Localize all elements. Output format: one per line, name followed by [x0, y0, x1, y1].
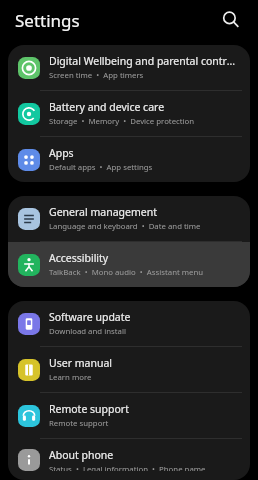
staticText: Apps — [49, 146, 74, 160]
staticText: About phone — [49, 448, 114, 462]
button[interactable]: User manual — [8, 347, 250, 392]
staticText: Accessibility — [49, 251, 109, 265]
button[interactable]: Software update — [8, 301, 250, 346]
button[interactable]: General management — [8, 196, 250, 241]
button[interactable]: About phone — [8, 439, 250, 480]
staticText: Remote support — [49, 418, 109, 429]
button[interactable]: Accessibility — [8, 242, 250, 287]
staticText: Software update — [49, 310, 131, 324]
staticText: General management — [49, 205, 157, 219]
staticText: Status • Legal information • Phone name — [49, 464, 206, 471]
button[interactable]: Remote support — [8, 393, 250, 438]
staticText: Learn more — [49, 372, 92, 383]
staticText: Download and install — [49, 326, 126, 337]
staticText: Remote support — [49, 402, 129, 416]
staticText: Default apps • App settings — [49, 162, 153, 173]
staticText: Storage • Memory • Device protection — [49, 116, 195, 127]
staticText: Battery and device care — [49, 100, 165, 114]
button[interactable]: Apps — [8, 137, 250, 182]
staticText: Settings — [15, 9, 80, 32]
button[interactable]: Battery and device care — [8, 91, 250, 136]
staticText: TalkBack • Mono audio • Assistant menu — [49, 267, 204, 278]
staticText: User manual — [49, 356, 112, 370]
button[interactable]: Search — [218, 7, 244, 33]
button[interactable]: Digital Wellbeing and parental controls — [8, 45, 250, 90]
staticText: Language and keyboard • Date and time — [49, 221, 201, 232]
staticText: Screen time • App timers — [49, 70, 144, 81]
staticText: Digital Wellbeing and parental controls — [49, 54, 240, 68]
